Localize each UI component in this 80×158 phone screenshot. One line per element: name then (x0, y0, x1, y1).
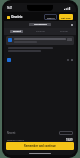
staticText: Get App (61, 16, 71, 19)
staticText: 9:41 (7, 6, 13, 10)
staticText: System (60, 30, 68, 33)
staticText: NOTEBOOK (34, 23, 47, 26)
button[interactable] (4, 55, 76, 64)
staticText: Recent (7, 131, 16, 135)
staticText: Oneiric (11, 15, 23, 19)
button[interactable]: Close (70, 23, 74, 27)
button[interactable]: Get App (59, 14, 73, 20)
staticText: Favorite (36, 30, 45, 33)
staticText: Recent (13, 30, 21, 33)
button[interactable]: Sign in (44, 14, 57, 20)
staticText: 0.00 (67, 132, 72, 135)
staticText: 18.89 (66, 138, 73, 141)
button[interactable]: 0.00 (59, 131, 73, 135)
staticText: Sign in (47, 16, 55, 19)
button[interactable]: Favorite (28, 28, 52, 35)
staticText: Register items (7, 138, 24, 141)
button[interactable]: Recent (4, 28, 28, 35)
button[interactable] (6, 36, 74, 45)
button[interactable]: System (52, 28, 76, 35)
staticText: Remember and continue (24, 144, 56, 148)
button[interactable]: Oneiric (7, 15, 23, 19)
button[interactable]: Remember and continue (6, 142, 74, 150)
